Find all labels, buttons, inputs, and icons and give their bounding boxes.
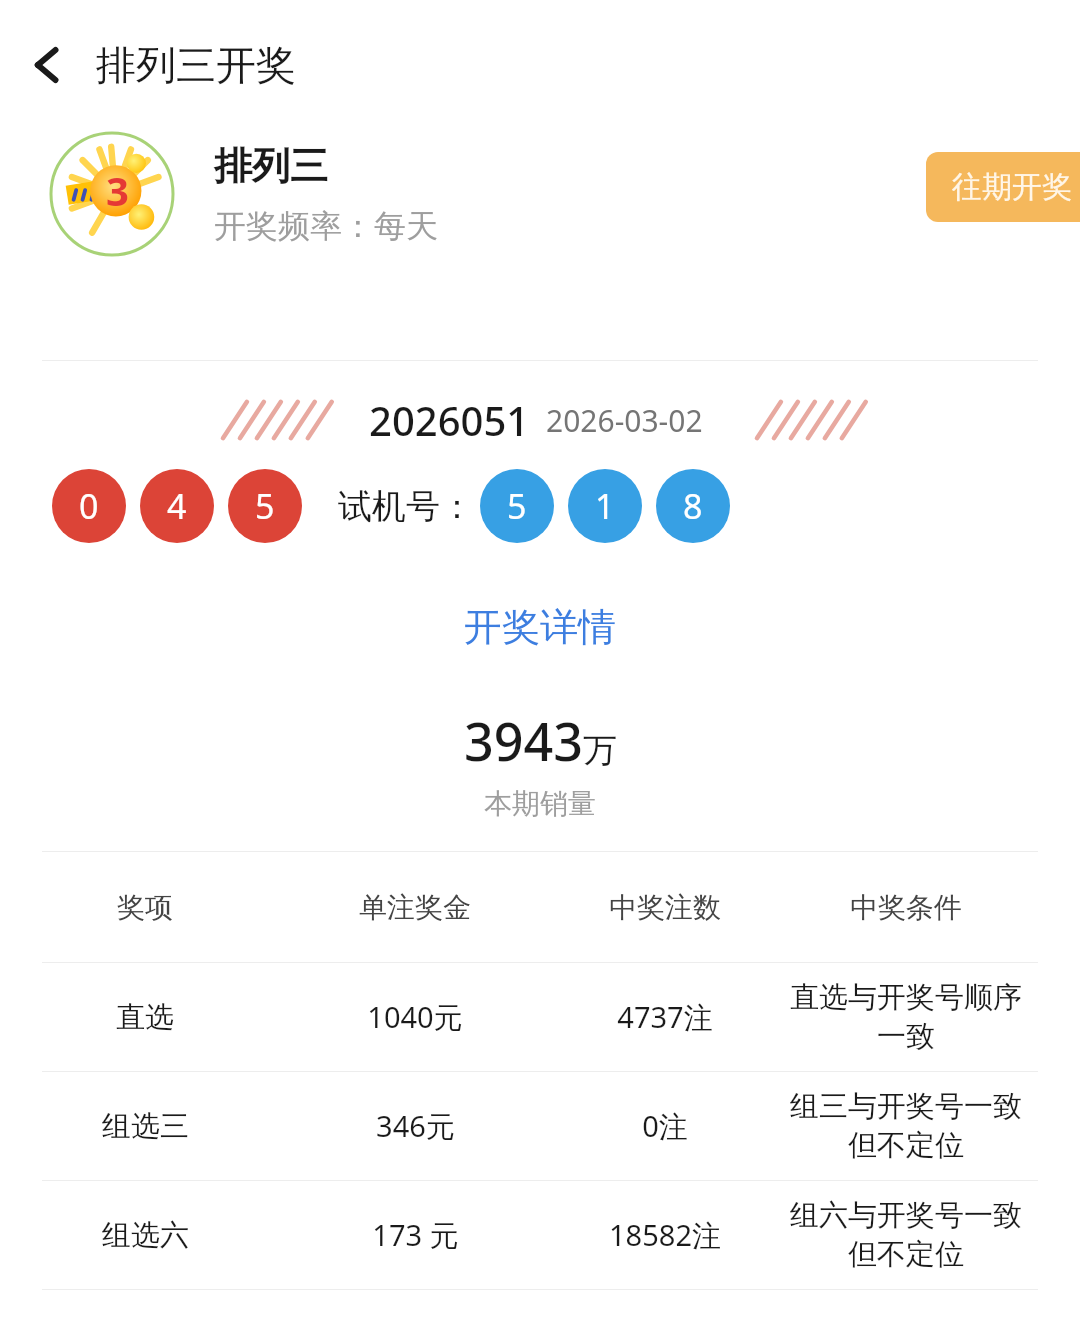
button[interactable]: 直选 [0, 963, 1080, 1071]
staticText: 5 [255, 483, 275, 529]
staticText: 万 [583, 729, 617, 772]
staticText: 2026051 [369, 393, 530, 447]
staticText: 4 [167, 483, 187, 529]
button[interactable]: 组选三 [0, 1072, 1080, 1180]
button[interactable]: 开奖详情 [440, 595, 640, 659]
staticText: 18582注 [609, 1215, 721, 1255]
staticText: 直选 [116, 999, 174, 1036]
button[interactable]: Back [0, 17, 96, 113]
button[interactable]: 组选六 [0, 1181, 1080, 1289]
staticText: 排列三开奖 [96, 40, 296, 90]
staticText: 0 [79, 483, 99, 529]
staticText: 中奖条件 [850, 890, 962, 925]
staticText: 单注奖金 [359, 890, 471, 925]
staticText: 8 [683, 483, 703, 529]
staticText: 本期销量 [484, 786, 596, 821]
staticText: 组六与开奖号一致但不定位 [790, 1197, 1022, 1273]
staticText: 3943 [464, 705, 583, 776]
staticText: 2026-03-02 [546, 400, 703, 441]
staticText: 直选与开奖号顺序一致 [790, 979, 1022, 1055]
staticText: 试机号： [338, 485, 474, 528]
staticText: 3 [106, 163, 129, 217]
staticText: 4737注 [617, 997, 713, 1037]
staticText: 组选三 [102, 1108, 189, 1145]
staticText: 开奖频率：每天 [214, 206, 438, 246]
staticText: 173 元 [372, 1215, 459, 1255]
staticText: 开奖详情 [464, 603, 616, 651]
staticText: 中奖注数 [609, 890, 721, 925]
staticText: 往期开奖 [952, 168, 1072, 206]
staticText: 0注 [642, 1106, 688, 1146]
staticText: 组选六 [102, 1217, 189, 1254]
staticText: 1 [595, 483, 615, 529]
staticText: 5 [507, 483, 527, 529]
staticText: 奖项 [117, 890, 173, 925]
staticText: 排列三 [214, 142, 328, 190]
button[interactable]: 往期开奖 [926, 152, 1080, 222]
staticText: 346元 [376, 1106, 455, 1146]
staticText: 1040元 [367, 997, 463, 1037]
staticText: 组三与开奖号一致但不定位 [790, 1088, 1022, 1164]
